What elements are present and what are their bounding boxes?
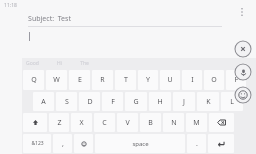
staticText: X — [79, 118, 84, 128]
button[interactable]: L — [221, 92, 243, 111]
button[interactable]: &123 — [23, 134, 51, 153]
staticText: U — [167, 75, 173, 85]
staticText: V — [125, 118, 130, 128]
button[interactable]: Emoji — [234, 86, 252, 104]
staticText: 11:18 — [4, 2, 17, 9]
staticText: D — [87, 97, 93, 107]
button[interactable]: T — [115, 70, 136, 90]
staticText: , — [62, 139, 64, 149]
button[interactable]: Q — [23, 70, 44, 90]
button[interactable]: N — [163, 113, 184, 132]
button[interactable]: S — [56, 92, 77, 111]
staticText: P — [234, 75, 239, 85]
staticText: &123 — [31, 140, 44, 147]
button[interactable]: E — [69, 70, 90, 90]
staticText: L — [230, 97, 234, 107]
button[interactable]: B — [140, 113, 161, 132]
staticText: Y — [146, 75, 150, 85]
staticText: I — [191, 75, 194, 85]
button[interactable]: . — [187, 134, 206, 153]
staticText: space — [132, 140, 149, 148]
staticText: N — [171, 118, 177, 128]
button[interactable]: Hi — [57, 60, 62, 67]
staticText: O — [211, 75, 217, 85]
staticText: Z — [57, 118, 62, 128]
staticText: Hi — [57, 60, 62, 67]
button[interactable]: R — [92, 70, 113, 90]
button[interactable]: D — [79, 92, 100, 111]
button[interactable]: Z — [49, 113, 69, 132]
button[interactable]: I — [182, 70, 202, 90]
staticText: B — [148, 118, 153, 128]
staticText: C — [102, 118, 107, 128]
button[interactable]: O — [204, 70, 224, 90]
staticText: W — [53, 75, 60, 85]
button[interactable]: space — [95, 134, 185, 153]
button[interactable]: Emoji — [74, 134, 93, 153]
button[interactable]: Enter — [208, 134, 234, 153]
staticText: The — [80, 60, 89, 67]
staticText: K — [206, 97, 211, 107]
staticText: A — [41, 97, 46, 107]
button[interactable]: K — [197, 92, 219, 111]
staticText: H — [157, 97, 163, 107]
staticText: Subject: Test — [28, 14, 71, 24]
staticText: S — [65, 97, 69, 107]
button[interactable]: U — [160, 70, 180, 90]
button[interactable]: Close — [234, 40, 252, 58]
staticText: J — [183, 97, 185, 107]
button[interactable]: Good — [26, 60, 39, 67]
staticText: G — [133, 97, 139, 107]
button[interactable]: Y — [138, 70, 158, 90]
staticText: R — [100, 75, 105, 85]
button[interactable]: H — [149, 92, 171, 111]
staticText: M — [193, 118, 200, 128]
staticText: Q — [31, 75, 37, 85]
button[interactable]: , — [53, 134, 72, 153]
staticText: E — [78, 75, 82, 85]
button[interactable]: G — [125, 92, 147, 111]
button[interactable]: Voice input — [234, 63, 252, 81]
button[interactable]: M — [186, 113, 207, 132]
button[interactable]: W — [46, 70, 67, 90]
button[interactable]: The — [80, 60, 89, 67]
staticText: . — [196, 139, 198, 149]
button[interactable]: A — [33, 92, 54, 111]
staticText: F — [111, 97, 115, 107]
button[interactable]: C — [94, 113, 115, 132]
button[interactable]: J — [173, 92, 195, 111]
button[interactable]: Backspace — [209, 113, 234, 132]
staticText: Good — [26, 60, 39, 67]
button[interactable]: X — [71, 113, 92, 132]
button[interactable]: Shift — [23, 113, 47, 132]
button[interactable]: F — [102, 92, 123, 111]
button[interactable]: More options — [234, 4, 250, 20]
button[interactable]: P — [226, 70, 246, 90]
staticText: T — [124, 75, 128, 85]
button[interactable]: V — [117, 113, 138, 132]
